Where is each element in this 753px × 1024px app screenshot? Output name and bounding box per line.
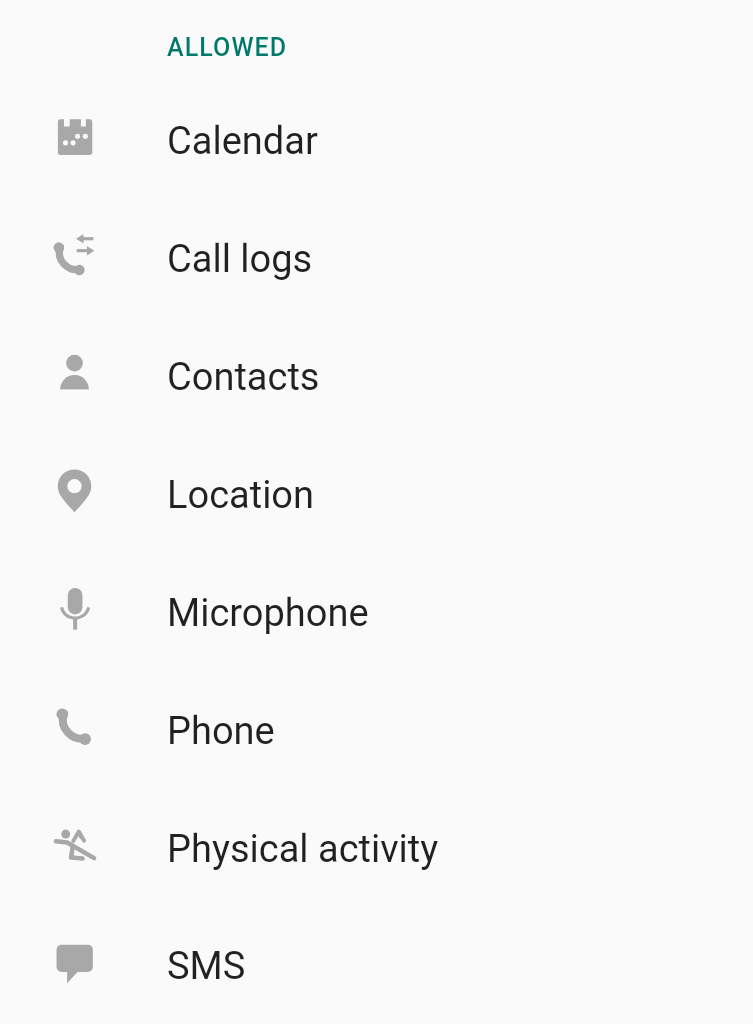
button[interactable]: Physical activity bbox=[0, 790, 753, 908]
button[interactable]: Contacts bbox=[0, 318, 753, 436]
staticText: Calendar bbox=[167, 119, 318, 164]
button[interactable]: Location bbox=[0, 436, 753, 554]
staticText: Contacts bbox=[167, 355, 320, 400]
button[interactable]: Call logs bbox=[0, 200, 753, 318]
staticText: Physical activity bbox=[167, 827, 439, 872]
button[interactable]: Microphone bbox=[0, 554, 753, 672]
staticText: Phone bbox=[167, 709, 275, 754]
staticText: ALLOWED bbox=[167, 33, 288, 62]
staticText: Call logs bbox=[167, 237, 313, 282]
staticText: Microphone bbox=[167, 591, 369, 636]
staticText: Location bbox=[167, 473, 315, 518]
button[interactable]: SMS bbox=[0, 908, 753, 1024]
button[interactable]: Phone bbox=[0, 672, 753, 790]
button[interactable]: Calendar bbox=[0, 82, 753, 200]
staticText: SMS bbox=[167, 944, 246, 989]
